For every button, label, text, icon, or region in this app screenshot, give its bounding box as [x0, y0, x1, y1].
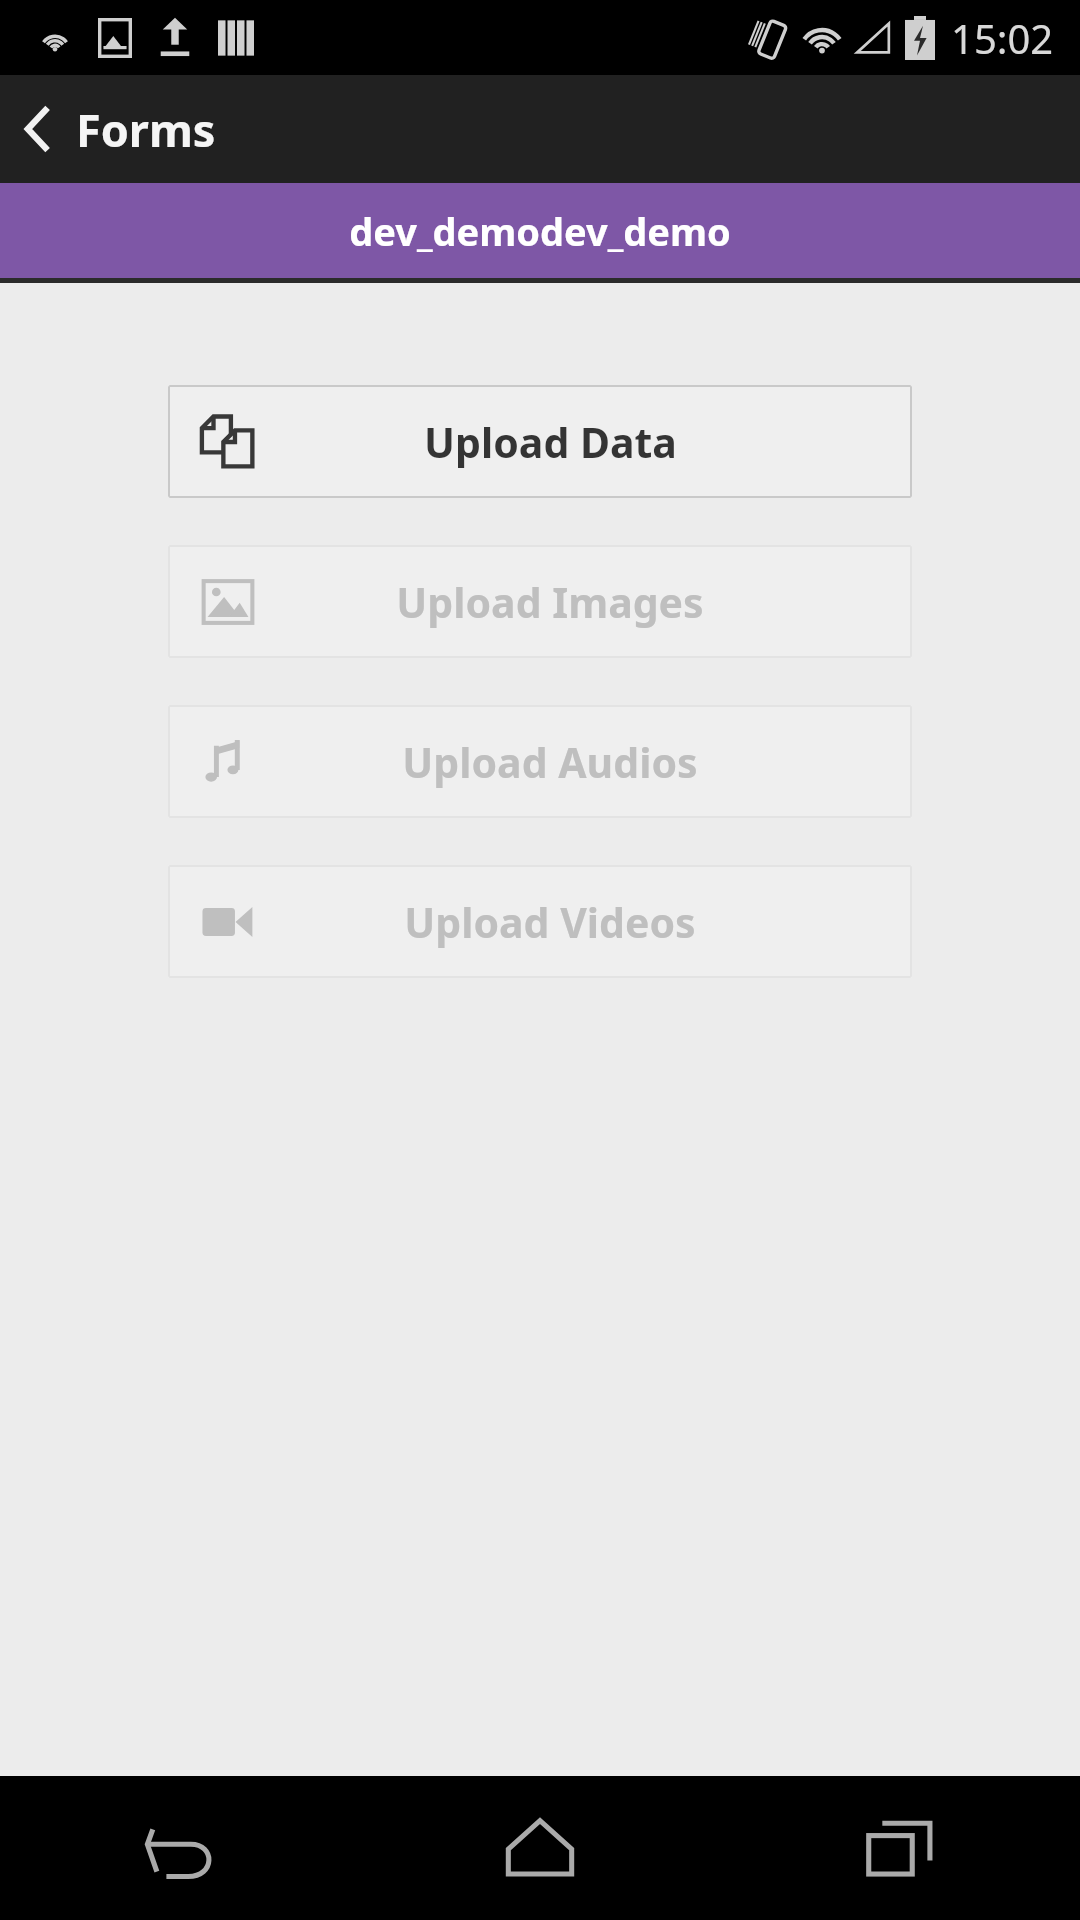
- staticText: dev_demodev_demo: [349, 205, 731, 257]
- button[interactable]: Upload Images: [168, 545, 912, 658]
- staticText: Upload Data: [424, 414, 677, 470]
- staticText: 15:02: [951, 11, 1054, 65]
- button[interactable]: Home: [360, 1776, 720, 1920]
- button[interactable]: Back: [0, 75, 76, 183]
- button[interactable]: Back: [0, 1776, 360, 1920]
- button[interactable]: Upload Data: [168, 385, 912, 498]
- button[interactable]: Recent apps: [720, 1776, 1080, 1920]
- button[interactable]: Upload Audios: [168, 705, 912, 818]
- staticText: Upload Videos: [404, 894, 696, 950]
- staticText: Upload Images: [396, 574, 704, 630]
- staticText: Forms: [76, 99, 216, 160]
- staticText: Upload Audios: [402, 734, 698, 790]
- button[interactable]: Upload Videos: [168, 865, 912, 978]
